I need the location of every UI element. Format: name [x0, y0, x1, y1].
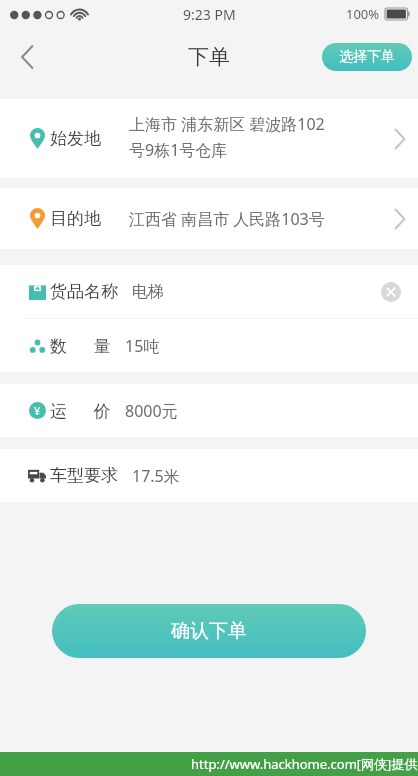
staticText: 号9栋1号仓库	[129, 139, 228, 161]
staticText: 车型要求	[50, 465, 118, 486]
button[interactable]: 车型要求	[0, 449, 418, 502]
button[interactable]: Destination address	[0, 188, 418, 249]
staticText: 数 量	[50, 334, 111, 357]
button[interactable]: Clear	[380, 281, 402, 303]
staticText: 货品名称	[50, 281, 118, 302]
staticText: 上海市 浦东新区 碧波路102	[129, 113, 325, 135]
staticText: 电梯	[132, 282, 380, 302]
staticText: 100%	[346, 5, 380, 23]
staticText: 8000元	[125, 400, 402, 422]
staticText: 9:23 PM	[183, 5, 236, 24]
button[interactable]: 货品名称	[0, 265, 418, 318]
staticText: 江西省 南昌市 人民路103号	[129, 208, 325, 230]
staticText: 运 价	[50, 399, 111, 422]
staticText: 17.5米	[132, 465, 402, 487]
staticText: ¥	[34, 403, 41, 418]
button[interactable]: 选择下单	[322, 43, 412, 71]
staticText: 始发地	[50, 128, 101, 149]
staticText: 目的地	[50, 208, 101, 229]
staticText: 确认下单	[171, 619, 247, 643]
staticText: 15吨	[125, 335, 402, 357]
staticText: http://www.hackhome.com[网侠]提供	[191, 755, 418, 773]
button[interactable]: 确认下单	[52, 604, 366, 658]
staticText: 下单	[188, 44, 230, 70]
button[interactable]: 数 量	[0, 319, 418, 372]
staticText: 选择下单	[339, 48, 395, 66]
button[interactable]: Origin address	[0, 99, 418, 178]
button[interactable]: ¥	[0, 384, 418, 437]
button[interactable]: Back	[0, 30, 54, 84]
